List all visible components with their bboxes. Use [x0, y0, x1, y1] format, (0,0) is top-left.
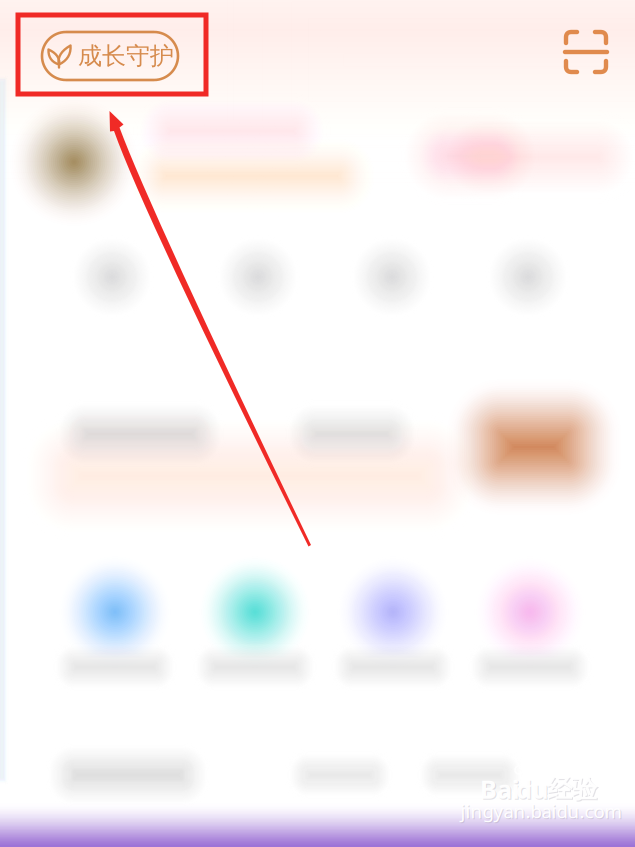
staticText: jingyan.baidu.com [461, 800, 622, 824]
button[interactable]: Scan [560, 26, 612, 78]
staticText: 经验 [548, 774, 598, 805]
button[interactable]: 成长守护 [42, 32, 178, 80]
staticText: Bai [481, 773, 521, 807]
staticText: 经验 [547, 773, 597, 804]
staticText: Bai [480, 772, 520, 806]
staticText: du [516, 772, 548, 806]
staticText: jingyan.baidu.com [460, 799, 621, 823]
staticText: 成长守护 [78, 41, 174, 71]
staticText: du [517, 773, 549, 807]
